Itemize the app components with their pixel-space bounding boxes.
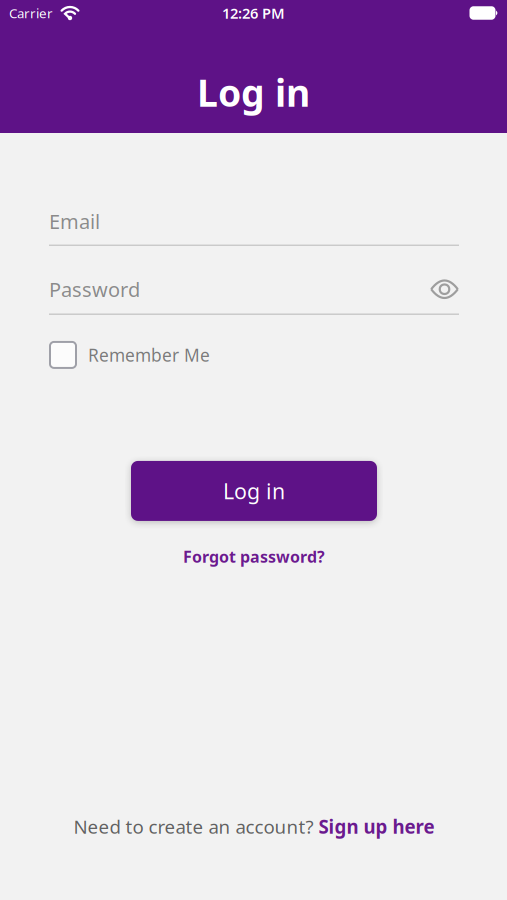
button[interactable]: Forgot password? bbox=[183, 546, 325, 567]
staticText: Remember Me bbox=[88, 343, 210, 366]
staticText: Sign up here bbox=[318, 814, 434, 839]
staticText: Need to create an account? bbox=[73, 814, 318, 839]
button[interactable]: Sign up here bbox=[318, 814, 434, 839]
staticText: Forgot password? bbox=[183, 546, 325, 567]
button[interactable]: Remember Me bbox=[50, 342, 210, 368]
button[interactable]: Show password bbox=[430, 280, 459, 299]
staticText: Log in bbox=[223, 477, 285, 505]
staticText: Password bbox=[49, 276, 140, 303]
staticText: 12:26 PM bbox=[222, 3, 285, 23]
button[interactable]: Log in bbox=[131, 461, 377, 521]
staticText: Carrier bbox=[9, 4, 53, 22]
staticText: Log in bbox=[197, 67, 310, 117]
staticText: Email bbox=[49, 208, 100, 235]
